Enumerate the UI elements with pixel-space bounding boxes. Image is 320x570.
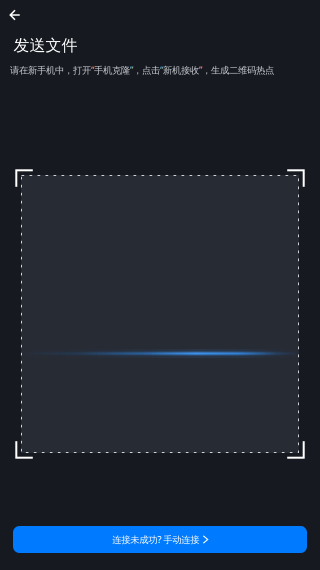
staticText: 发送文件 bbox=[13, 36, 77, 55]
staticText: 请在新手机中，打开“手机克隆”，点击“新机接收”，生成二维码热点 bbox=[10, 64, 274, 76]
button[interactable]: 连接未成功? 手动连接 bbox=[13, 526, 307, 553]
button[interactable]: Back bbox=[0, 0, 30, 30]
staticText: 连接未成功? 手动连接 bbox=[112, 533, 199, 546]
